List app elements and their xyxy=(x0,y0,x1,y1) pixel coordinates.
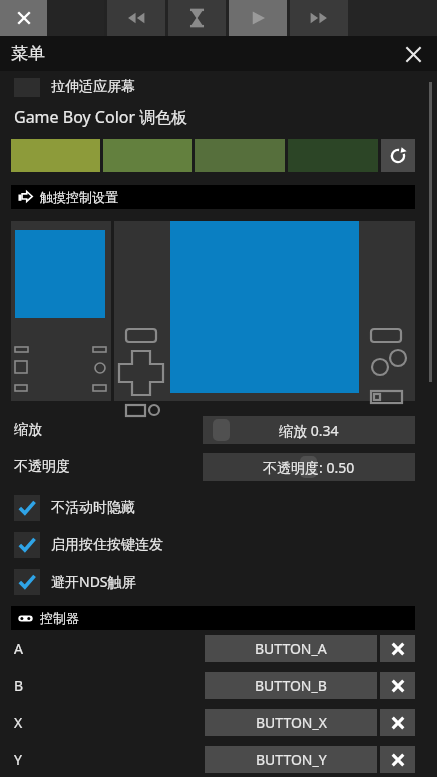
button[interactable]: Play xyxy=(229,0,287,36)
staticText: BUTTON_X xyxy=(256,713,327,732)
button[interactable]: BUTTON_Y xyxy=(205,746,377,773)
button[interactable]: BUTTON_X xyxy=(205,709,377,736)
staticText: 拉伸适应屏幕 xyxy=(51,78,135,96)
button[interactable]: 不透明度: 0.50 xyxy=(203,453,415,481)
button[interactable]: Clear A binding xyxy=(380,635,415,662)
staticText: Y xyxy=(14,750,22,769)
staticText: 启用按住按键连发 xyxy=(51,536,163,554)
button[interactable]: Close xyxy=(0,0,47,36)
button[interactable]: 触摸控制设置 xyxy=(11,185,415,209)
staticText: B xyxy=(14,676,24,695)
button[interactable]: 不活动时隐藏 xyxy=(0,489,437,526)
button[interactable]: 避开NDS触屏 xyxy=(0,563,437,600)
button[interactable]: Speed xyxy=(168,0,226,36)
button[interactable]: BUTTON_B xyxy=(205,672,377,699)
button[interactable]: Rewind xyxy=(107,0,165,36)
staticText: 不透明度 xyxy=(14,458,70,476)
button[interactable]: Fast forward xyxy=(290,0,348,36)
button[interactable]: Reset palette xyxy=(381,139,415,172)
button[interactable]: Clear Y binding xyxy=(380,746,415,773)
staticText: 不透明度: 0.50 xyxy=(263,458,355,477)
button[interactable]: 启用按住按键连发 xyxy=(0,526,437,563)
staticText: 避开NDS触屏 xyxy=(51,572,136,591)
staticText: 菜单 xyxy=(11,43,45,64)
staticText: 不活动时隐藏 xyxy=(51,499,135,517)
button[interactable]: Touch control layout preview xyxy=(11,221,415,401)
button[interactable]: Close menu xyxy=(399,40,427,68)
button[interactable]: BUTTON_A xyxy=(205,635,377,662)
staticText: A xyxy=(14,639,23,658)
staticText: Game Boy Color 调色板 xyxy=(14,106,188,128)
staticText: 缩放 xyxy=(14,421,42,439)
button[interactable]: Clear B binding xyxy=(380,672,415,699)
staticText: BUTTON_Y xyxy=(256,750,327,769)
staticText: 控制器 xyxy=(40,610,79,626)
button[interactable]: 拉伸适应屏幕 xyxy=(0,71,437,97)
button[interactable]: 缩放 0.34 xyxy=(203,416,415,444)
staticText: 触摸控制设置 xyxy=(40,189,118,205)
staticText: BUTTON_A xyxy=(255,639,327,658)
button[interactable]: Clear X binding xyxy=(380,709,415,736)
button[interactable]: 控制器 xyxy=(11,606,415,630)
staticText: 缩放 0.34 xyxy=(279,421,339,440)
staticText: BUTTON_B xyxy=(255,676,327,695)
staticText: X xyxy=(14,713,23,732)
